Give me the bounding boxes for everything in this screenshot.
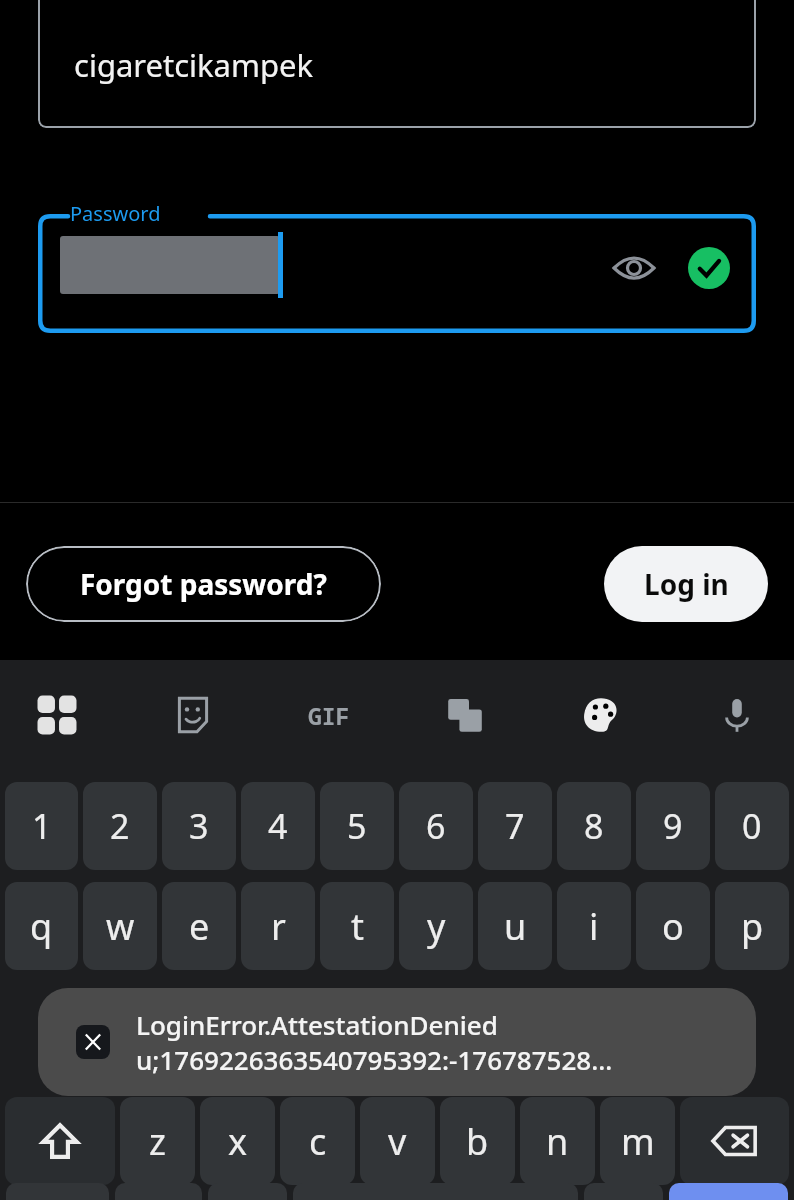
staticText: 3	[189, 803, 209, 849]
button[interactable]: y	[399, 882, 473, 970]
staticText: c	[309, 1117, 327, 1166]
button[interactable]: 4	[241, 782, 315, 870]
staticText: n	[546, 1117, 569, 1166]
button[interactable]: LoginError.AttestationDenied	[38, 988, 756, 1096]
button[interactable]: x	[200, 1097, 275, 1185]
staticText: LoginError.AttestationDenied	[136, 1007, 498, 1042]
staticText: i	[589, 902, 599, 951]
staticText: x	[228, 1117, 248, 1166]
button[interactable]: e	[162, 882, 236, 970]
button[interactable]: Backspace	[680, 1097, 789, 1185]
button[interactable]: Stickers	[166, 688, 220, 742]
staticText: 9	[663, 803, 683, 849]
button[interactable]: u	[478, 882, 552, 970]
button[interactable]: 6	[399, 782, 473, 870]
button[interactable]	[6, 1183, 109, 1200]
button[interactable]: Log in	[604, 546, 768, 622]
button[interactable]: n	[520, 1097, 595, 1185]
button[interactable]: r	[241, 882, 315, 970]
button[interactable]: i	[557, 882, 631, 970]
staticText: v	[388, 1117, 407, 1166]
staticText: 2	[110, 803, 130, 849]
button[interactable]: z	[120, 1097, 195, 1185]
button[interactable]: t	[320, 882, 394, 970]
button[interactable]	[208, 1183, 287, 1200]
staticText: e	[189, 902, 210, 951]
button[interactable]	[584, 1183, 663, 1200]
button[interactable]: Password valid	[688, 247, 730, 289]
staticText: Log in	[644, 565, 729, 603]
staticText: 0	[742, 803, 762, 849]
button[interactable]: GIF	[302, 688, 356, 742]
staticText: Password	[70, 200, 161, 227]
button[interactable]: w	[83, 882, 157, 970]
staticText: 6	[426, 803, 446, 849]
staticText: u	[504, 902, 527, 951]
staticText: 8	[584, 803, 604, 849]
button[interactable]: 8	[557, 782, 631, 870]
button[interactable]: 5	[320, 782, 394, 870]
button[interactable]: b	[440, 1097, 515, 1185]
button[interactable]: Shift	[5, 1097, 115, 1185]
staticText: p	[741, 902, 764, 951]
staticText: u;1769226363540795392:-176787528…	[136, 1042, 613, 1077]
button[interactable]: 3	[162, 782, 236, 870]
button[interactable]: 0	[715, 782, 789, 870]
button[interactable]: Show password	[608, 242, 660, 294]
button[interactable]: Voice input	[710, 688, 764, 742]
button[interactable]: 1	[5, 782, 78, 870]
staticText: z	[149, 1117, 166, 1166]
button[interactable]: Themes	[574, 688, 628, 742]
button[interactable]: p	[715, 882, 789, 970]
button[interactable]: q	[5, 882, 78, 970]
staticText: 7	[505, 803, 525, 849]
button[interactable]: v	[360, 1097, 435, 1185]
button[interactable]: Translate	[438, 688, 492, 742]
button[interactable]	[669, 1183, 788, 1200]
staticText: Forgot password?	[80, 565, 327, 603]
button[interactable]: 9	[636, 782, 710, 870]
button[interactable]: cigaretcikampek	[38, 0, 756, 128]
button[interactable]: o	[636, 882, 710, 970]
button[interactable]: c	[280, 1097, 355, 1185]
staticText: q	[30, 902, 53, 951]
staticText: t	[351, 902, 364, 951]
staticText: 1	[32, 803, 52, 849]
staticText: b	[466, 1117, 489, 1166]
staticText: GIF	[308, 700, 350, 731]
staticText: y	[427, 902, 446, 951]
staticText: r	[271, 902, 286, 951]
button[interactable]: Password	[38, 214, 756, 333]
staticText: w	[106, 902, 135, 951]
button[interactable]: 7	[478, 782, 552, 870]
button[interactable]: 2	[83, 782, 157, 870]
button[interactable]	[115, 1183, 202, 1200]
staticText: cigaretcikampek	[74, 44, 314, 86]
staticText: 4	[268, 803, 288, 849]
button[interactable]: m	[600, 1097, 675, 1185]
button[interactable]: Forgot password?	[26, 546, 381, 622]
staticText: m	[621, 1117, 655, 1166]
staticText: 5	[347, 803, 367, 849]
staticText: o	[662, 902, 684, 951]
button[interactable]: Apps	[30, 688, 84, 742]
